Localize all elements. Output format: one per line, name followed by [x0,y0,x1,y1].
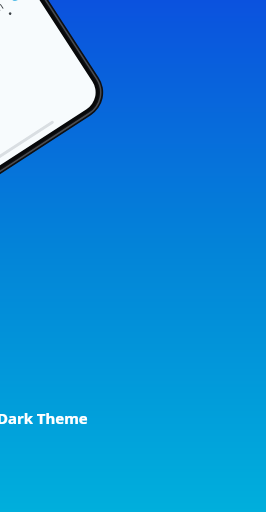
button[interactable]: Dark Theme preview [0,0,266,512]
button[interactable] [0,0,266,512]
